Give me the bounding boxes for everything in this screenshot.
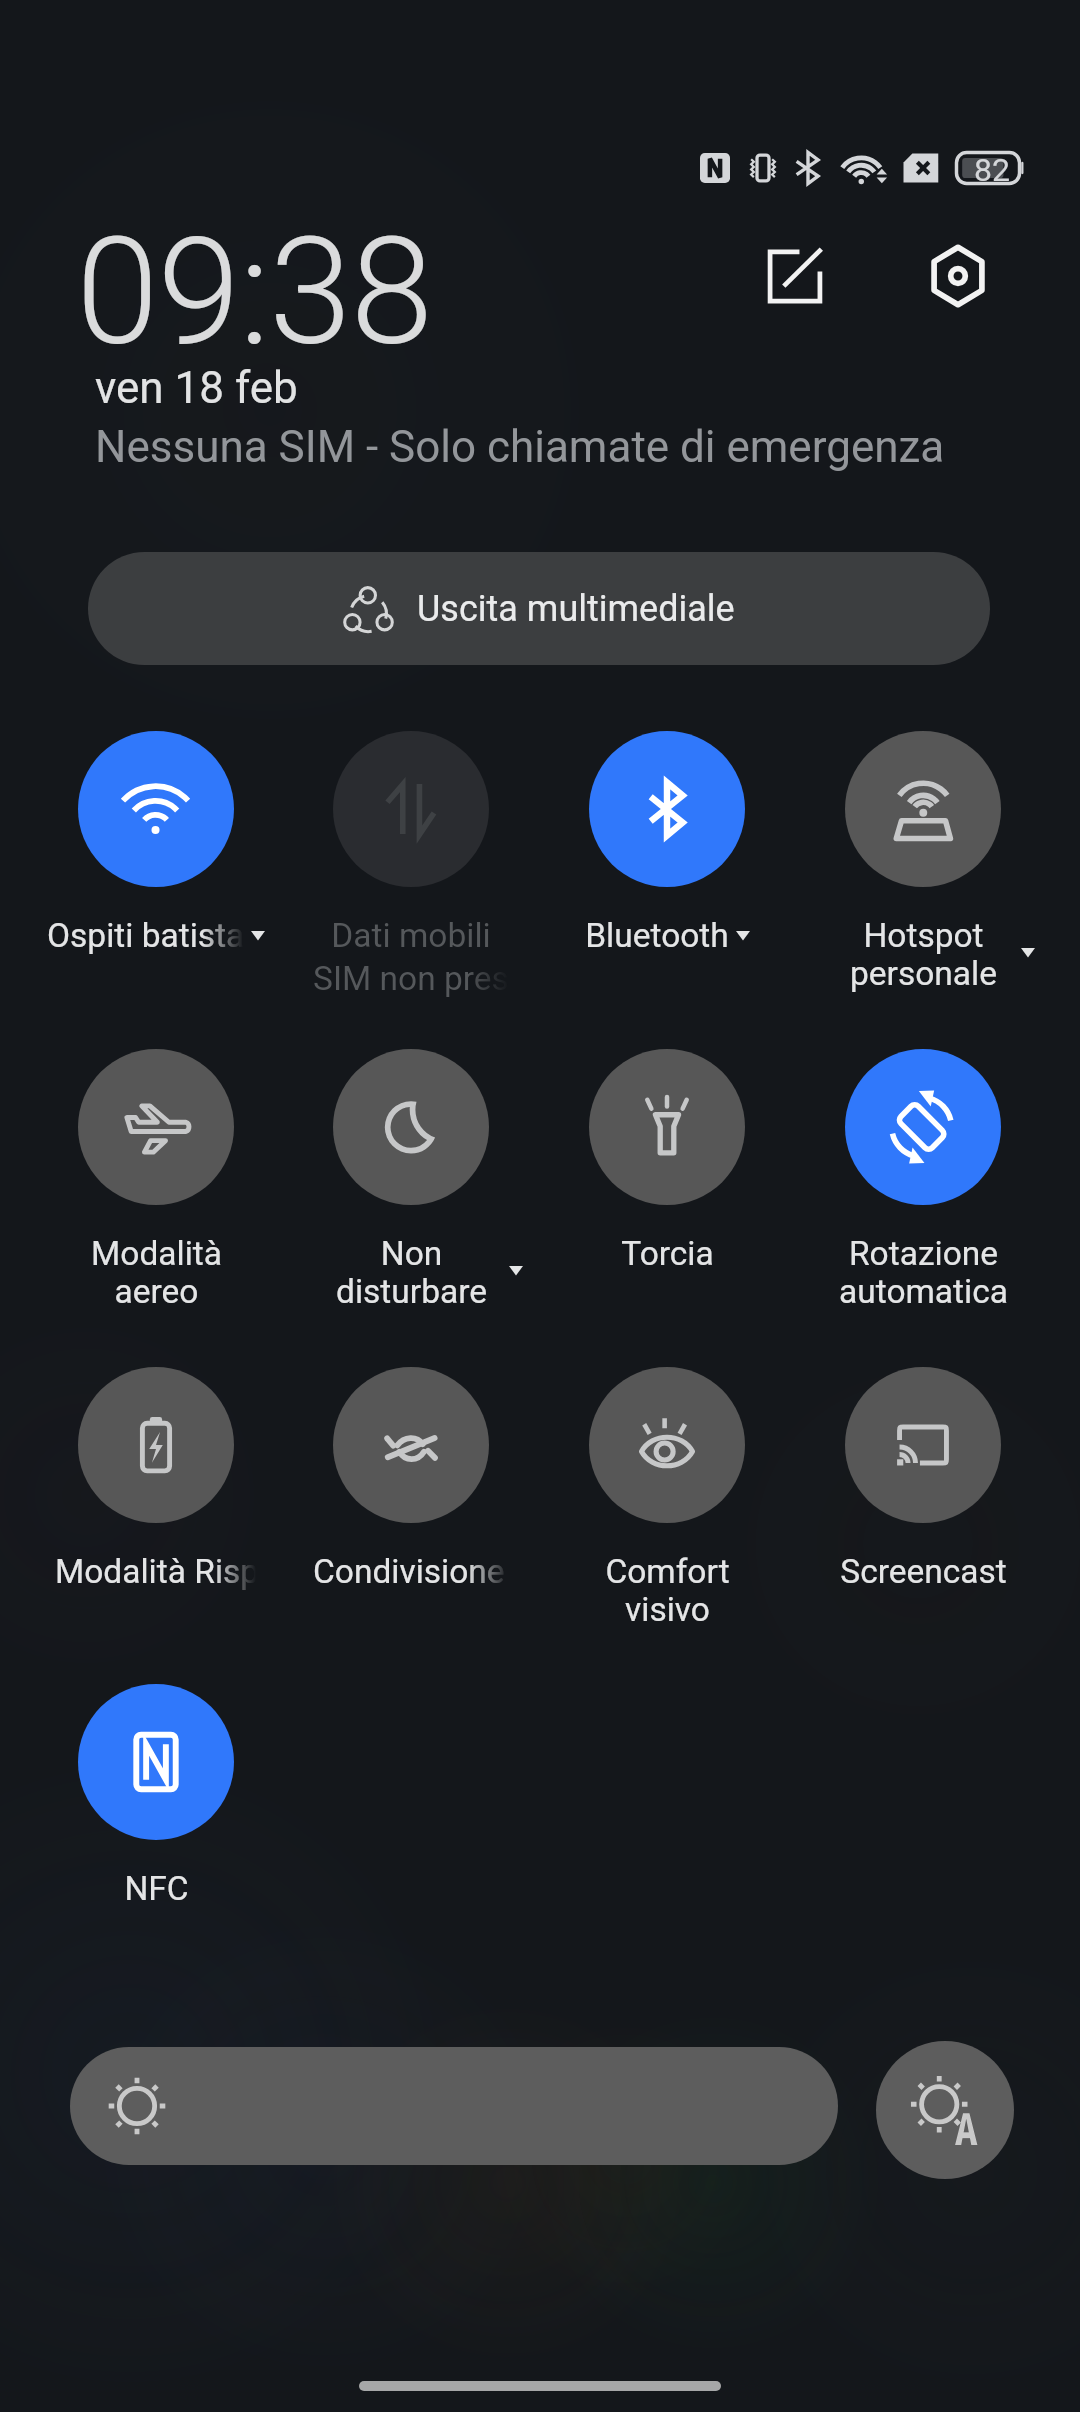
staticText: Rotazione automatica bbox=[839, 1234, 1008, 1311]
button[interactable]: Hotspot personale bbox=[845, 731, 1001, 887]
staticText: Modalità Risparmio energetico bbox=[55, 1552, 256, 1591]
button[interactable]: Condivisione rapida bbox=[333, 1367, 489, 1523]
staticText: Ospiti batista 1 bbox=[47, 916, 244, 955]
button[interactable]: Screencast bbox=[845, 1367, 1001, 1523]
staticText: Modalità aereo bbox=[91, 1234, 222, 1311]
button[interactable]: NFC bbox=[78, 1684, 234, 1840]
staticText: Uscita multimediale bbox=[417, 588, 735, 630]
staticText: Torcia bbox=[621, 1234, 714, 1273]
staticText: 09:38 bbox=[76, 205, 432, 380]
button[interactable]: Torcia bbox=[589, 1049, 745, 1205]
button[interactable]: Edit tiles bbox=[735, 216, 855, 336]
staticText: Bluetooth bbox=[585, 916, 729, 955]
button[interactable]: Uscita multimediale bbox=[88, 552, 990, 665]
button[interactable]: Rotazione automatica bbox=[845, 1049, 1001, 1205]
button[interactable]: Bluetooth bbox=[589, 731, 745, 887]
staticText: Comfort visivo bbox=[605, 1552, 730, 1629]
staticText: Dati mobili bbox=[331, 916, 491, 955]
button[interactable]: Ospiti batista 1 bbox=[78, 731, 234, 887]
button[interactable]: Non disturbare bbox=[333, 1049, 489, 1205]
button[interactable]: Brightness bbox=[70, 2047, 838, 2165]
staticText: Hotspot personale bbox=[850, 916, 997, 993]
staticText: ven 18 feb bbox=[95, 362, 298, 414]
staticText: NFC bbox=[124, 1869, 189, 1908]
button[interactable]: Settings bbox=[898, 216, 1018, 336]
button[interactable]: Dati mobili bbox=[333, 731, 489, 887]
button[interactable]: Automatic brightness bbox=[876, 2041, 1014, 2179]
staticText: Non disturbare bbox=[336, 1234, 487, 1311]
staticText: Condivisione rapida bbox=[313, 1552, 509, 1591]
staticText: SIM non presente bbox=[313, 959, 509, 998]
staticText: Screencast bbox=[840, 1552, 1007, 1591]
button[interactable]: Modalità Risparmio energetico bbox=[78, 1367, 234, 1523]
staticText: 82 bbox=[974, 151, 1010, 189]
button[interactable]: Comfort visivo bbox=[589, 1367, 745, 1523]
staticText: Nessuna SIM - Solo chiamate di emergenza bbox=[95, 421, 945, 473]
button[interactable]: Modalità aereo bbox=[78, 1049, 234, 1205]
